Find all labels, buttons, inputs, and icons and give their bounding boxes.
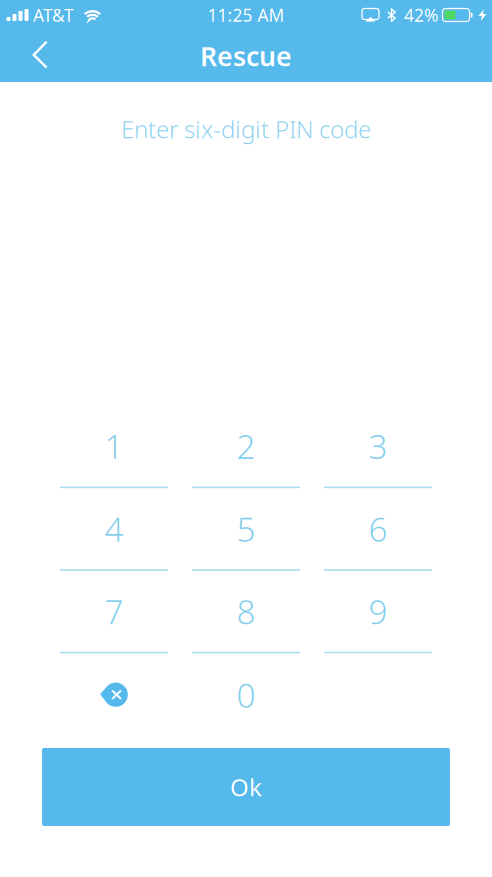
staticText: 1 bbox=[104, 424, 123, 468]
staticText: AT&T bbox=[33, 3, 74, 26]
staticText: 6 bbox=[368, 507, 387, 551]
button[interactable]: 8 bbox=[192, 571, 300, 653]
button[interactable]: Delete bbox=[60, 653, 168, 736]
staticText: 9 bbox=[368, 589, 387, 633]
staticText: 11:25 AM bbox=[207, 3, 284, 26]
staticText: Ok bbox=[230, 771, 262, 803]
button[interactable]: Ok bbox=[42, 748, 450, 826]
button[interactable]: Back bbox=[0, 30, 62, 82]
staticText: 3 bbox=[368, 424, 387, 468]
button[interactable]: 9 bbox=[324, 571, 432, 653]
staticText: 5 bbox=[236, 507, 255, 551]
button[interactable]: 5 bbox=[192, 488, 300, 571]
button[interactable]: 2 bbox=[192, 406, 300, 488]
staticText: 42% bbox=[404, 3, 438, 26]
staticText: 0 bbox=[236, 673, 255, 717]
staticText: 8 bbox=[236, 589, 255, 633]
button[interactable]: 4 bbox=[60, 488, 168, 571]
button[interactable]: 7 bbox=[60, 571, 168, 653]
staticText: 4 bbox=[104, 507, 123, 551]
staticText: 2 bbox=[236, 424, 255, 468]
button[interactable]: 6 bbox=[324, 488, 432, 571]
staticText: 7 bbox=[104, 589, 123, 633]
staticText: Rescue bbox=[200, 38, 292, 74]
button[interactable]: 1 bbox=[60, 406, 168, 488]
button[interactable]: 3 bbox=[324, 406, 432, 488]
button[interactable]: 0 bbox=[192, 653, 300, 736]
staticText: Enter six-digit PIN code bbox=[121, 113, 371, 145]
